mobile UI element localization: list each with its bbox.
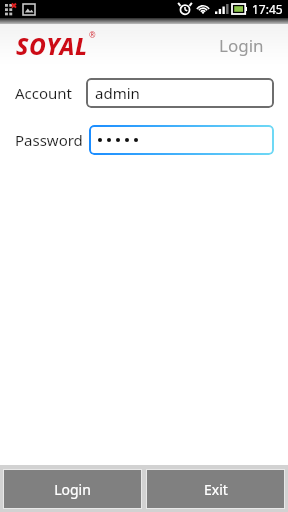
staticText: ®	[89, 29, 96, 40]
staticText: Login	[219, 34, 264, 57]
staticText: 17:45	[252, 1, 283, 17]
staticText: Account	[15, 83, 73, 103]
staticText: Password	[15, 130, 83, 150]
button[interactable]: Exit	[146, 469, 285, 509]
staticText: Login	[54, 480, 91, 499]
staticText: SOYAL	[16, 30, 88, 61]
staticText: Exit	[204, 480, 228, 499]
staticText: admin	[95, 83, 140, 103]
button[interactable]: Login	[219, 34, 264, 57]
button[interactable]: admin	[95, 78, 274, 108]
button[interactable]	[98, 125, 274, 155]
button[interactable]: Login	[3, 469, 142, 509]
